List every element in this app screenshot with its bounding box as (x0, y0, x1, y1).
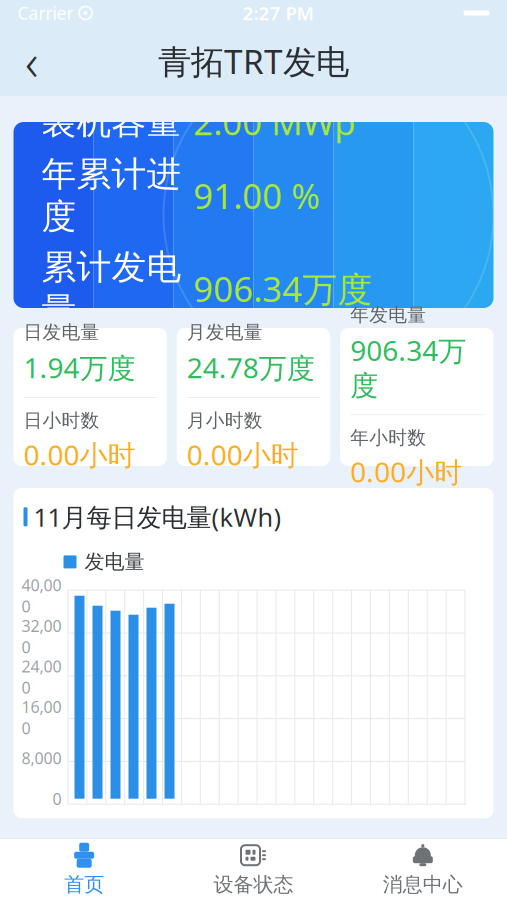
staticText: 906.34万度 (193, 266, 372, 312)
button[interactable]: 年发电量 (340, 328, 493, 466)
staticText: 11月每日发电量(kWh) (33, 500, 281, 534)
staticText: 消息中心 (383, 872, 463, 897)
staticText: 年发电量 (350, 304, 426, 327)
staticText: 装机容量 (41, 100, 181, 143)
button[interactable]: 消息中心 (338, 839, 507, 900)
staticText: 0.00小时 (187, 436, 299, 473)
staticText: 设备状态 (213, 872, 293, 897)
staticText: 0.00小时 (350, 453, 462, 490)
button[interactable]: 日发电量 (13, 328, 167, 466)
staticText: 日发电量 (23, 321, 99, 344)
staticText: 2.00 MWp (193, 99, 355, 145)
button[interactable]: Back (9, 35, 53, 87)
staticText: 0.00小时 (23, 436, 135, 473)
staticText: 日小时数 (23, 409, 99, 432)
staticText: 24,000 (21, 656, 61, 698)
staticText: 32,000 (21, 615, 61, 658)
button[interactable]: 设备状态 (169, 839, 338, 900)
staticText: 累计发电量 (41, 246, 181, 331)
staticText: 发电量 (84, 550, 144, 574)
staticText: 月发电量 (187, 321, 263, 344)
button[interactable]: 首页 (0, 839, 169, 900)
staticText: 青拓TRT发电 (158, 39, 349, 83)
staticText: Carrier (17, 1, 73, 24)
staticText: 8,000 (21, 747, 61, 769)
staticText: 91.00 % (193, 172, 320, 218)
staticText: 年小时数 (350, 426, 426, 449)
staticText: 906.34万度 (350, 332, 466, 403)
staticText: ‹ (25, 27, 38, 95)
staticText: 16,000 (21, 696, 61, 739)
button[interactable]: 月发电量 (177, 328, 330, 466)
staticText: 月小时数 (187, 409, 263, 432)
staticText: 1.94万度 (23, 349, 135, 386)
staticText: 2:27 PM (242, 1, 313, 25)
staticText: 24.78万度 (187, 349, 315, 386)
staticText: 40,000 (21, 574, 61, 617)
staticText: 年累计进度 (41, 153, 181, 238)
staticText: 0 (52, 788, 61, 809)
staticText: 首页 (64, 872, 104, 897)
